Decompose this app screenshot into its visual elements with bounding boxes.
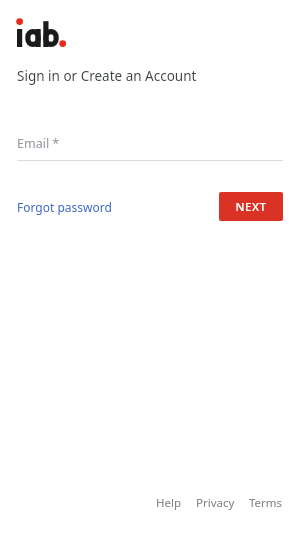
button[interactable]: Terms	[249, 495, 283, 511]
staticText: Privacy	[196, 495, 235, 511]
button[interactable]: Email *	[17, 135, 283, 161]
staticText: Help	[156, 495, 182, 511]
button[interactable]: NEXT	[219, 192, 283, 221]
staticText: Sign in or Create an Account	[17, 67, 197, 85]
button[interactable]: Forgot password	[17, 195, 112, 219]
staticText: NEXT	[235, 199, 267, 215]
button[interactable]: Privacy	[196, 495, 235, 511]
staticText: Email *	[17, 135, 60, 152]
button[interactable]: Help	[156, 495, 182, 511]
staticText: Terms	[249, 495, 283, 511]
staticText: Forgot password	[17, 199, 112, 215]
